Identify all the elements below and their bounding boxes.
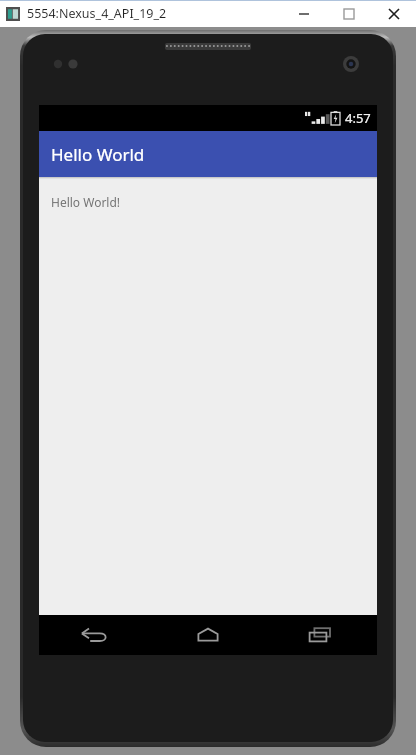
staticText: 5554:Nexus_4_API_19_2 (27, 5, 167, 22)
button[interactable]: Back (39, 615, 151, 655)
button[interactable]: Minimize (281, 0, 326, 27)
staticText: Hello World (51, 143, 145, 166)
staticText: Hello World! (51, 194, 121, 210)
button[interactable]: Home (151, 615, 264, 655)
button[interactable]: Maximize (326, 0, 371, 27)
button[interactable]: Close (371, 0, 416, 27)
button[interactable]: Recent apps (264, 615, 377, 655)
button[interactable]: Hello World (39, 131, 377, 177)
staticText: 4:57 (345, 109, 371, 127)
